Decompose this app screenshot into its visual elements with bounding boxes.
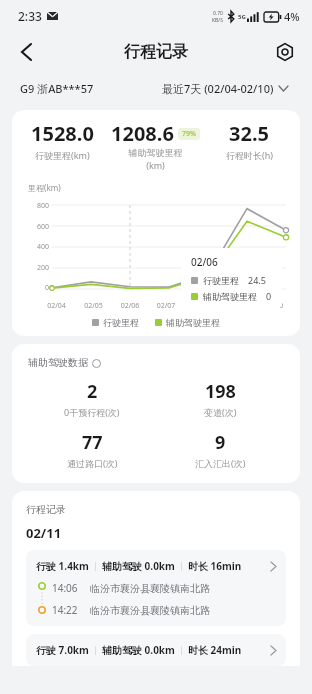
- staticText: G9 浙AB***57: [20, 81, 94, 96]
- staticText: 1208.6: [111, 120, 174, 147]
- staticText: 02/06: [191, 255, 218, 269]
- button[interactable]: Settings: [268, 35, 302, 69]
- staticText: 辅助驾驶 0.0km: [102, 559, 175, 573]
- staticText: 时长 24min: [188, 643, 242, 657]
- staticText: 14:22: [52, 603, 78, 617]
- staticText: 02/07: [148, 301, 184, 311]
- staticText: 行程记录: [124, 42, 188, 62]
- staticText: 时长 16min: [188, 559, 242, 573]
- staticText: 24.5: [248, 274, 266, 286]
- staticText: 1528.0: [31, 120, 94, 147]
- staticText: 2: [87, 379, 98, 404]
- staticText: 行程时长(h): [226, 149, 273, 161]
- staticText: 800: [37, 201, 50, 211]
- staticText: 里程(km): [28, 182, 61, 193]
- staticText: 0.70: [213, 10, 223, 17]
- staticText: 临汾市襄汾县襄陵镇南北路: [90, 604, 210, 617]
- staticText: 600: [37, 222, 50, 232]
- staticText: 400: [37, 242, 50, 252]
- staticText: 0: [266, 290, 272, 302]
- staticText: 9: [215, 430, 226, 455]
- staticText: 0干预行程(次): [64, 406, 120, 418]
- staticText: 辅助驾驶里程 (km): [107, 147, 204, 171]
- staticText: 02/10: [256, 301, 292, 311]
- button[interactable]: 行驶 7.0km: [26, 634, 286, 666]
- staticText: 79%: [182, 129, 196, 139]
- staticText: 行驶 7.0km: [36, 643, 89, 657]
- staticText: 198: [205, 379, 236, 404]
- staticText: 行驶里程: [103, 317, 139, 328]
- staticText: 汇入汇出(次): [195, 457, 246, 469]
- button[interactable]: G9 浙AB***57: [20, 81, 94, 96]
- staticText: 变道(次): [204, 406, 237, 418]
- staticText: 02/11: [26, 524, 62, 542]
- staticText: 4%: [284, 9, 300, 24]
- staticText: 32.5: [229, 120, 269, 147]
- staticText: 行驶里程(km): [35, 149, 90, 161]
- staticText: 辅助驾驶数据: [28, 356, 88, 369]
- staticText: 14:06: [52, 581, 78, 595]
- staticText: KB/S: [212, 17, 223, 24]
- button[interactable]: 最近7天 (02/04-02/10): [162, 81, 288, 96]
- staticText: 0: [45, 283, 50, 293]
- staticText: 临汾市襄汾县襄陵镇南北路: [90, 582, 210, 595]
- staticText: 行驶里程: [203, 275, 239, 286]
- staticText: 02/05: [75, 301, 112, 311]
- staticText: 通过路口(次): [67, 457, 118, 469]
- staticText: 行程记录: [26, 503, 66, 516]
- staticText: 77: [82, 430, 103, 455]
- staticText: 02/04: [38, 301, 75, 311]
- staticText: 200: [37, 263, 50, 273]
- staticText: 2:33: [18, 8, 42, 24]
- staticText: 行驶 1.4km: [36, 559, 89, 573]
- button[interactable]: 行驶 1.4km: [26, 550, 286, 626]
- button[interactable]: Info: [91, 358, 101, 368]
- staticText: 辅助驾驶里程: [203, 291, 257, 302]
- staticText: 5G: [238, 13, 246, 21]
- staticText: 辅助驾驶里程: [166, 317, 220, 328]
- staticText: 辅助驾驶 0.0km: [102, 643, 175, 657]
- staticText: 最近7天 (02/04-02/10): [162, 81, 274, 96]
- button[interactable]: Back: [8, 34, 44, 70]
- staticText: 02/06: [112, 301, 148, 311]
